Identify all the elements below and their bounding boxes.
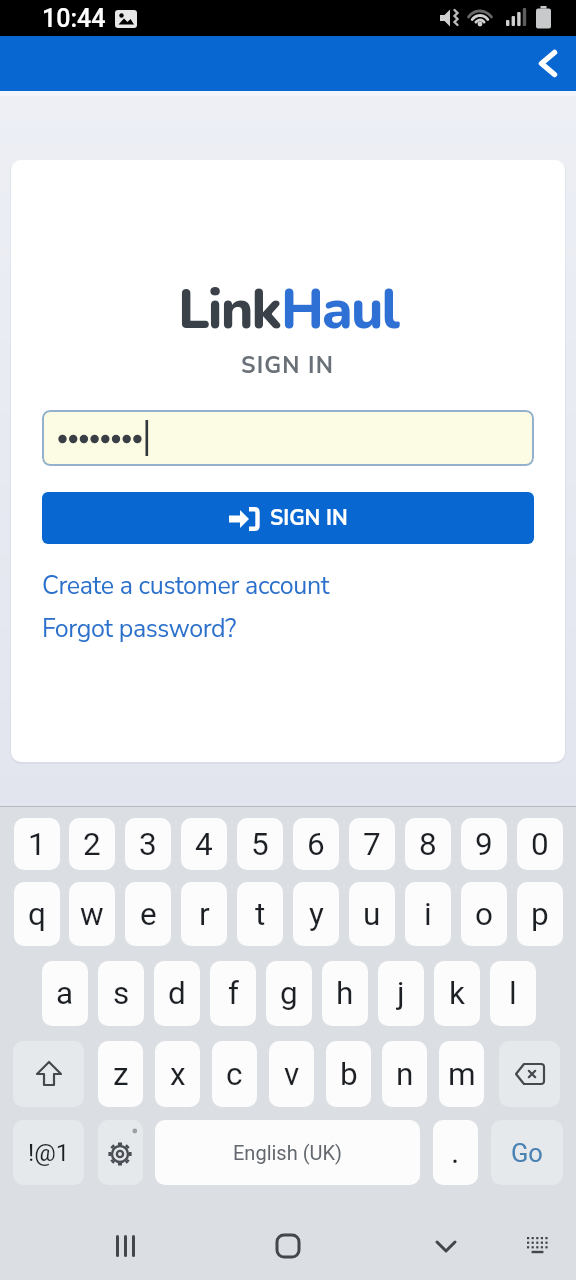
staticText: u (363, 896, 381, 933)
staticText: Forgot password? (42, 612, 236, 646)
staticText: q (28, 896, 46, 933)
staticText: !@1 (28, 1139, 70, 1167)
staticText: Haul (281, 272, 399, 347)
staticText: y (309, 896, 324, 933)
staticText: r (199, 896, 210, 933)
staticText: e (140, 896, 157, 933)
staticText: i (424, 896, 432, 933)
staticText: a (56, 975, 74, 1012)
staticText: o (475, 896, 493, 933)
staticText: g (280, 975, 298, 1012)
staticText: j (397, 975, 405, 1012)
staticText: k (449, 975, 465, 1012)
staticText: 2 (83, 826, 101, 863)
staticText: m (448, 1056, 476, 1093)
staticText: b (340, 1056, 358, 1093)
staticText: 3 (139, 826, 157, 863)
staticText: l (509, 975, 517, 1012)
staticText: p (531, 896, 549, 933)
staticText: x (170, 1056, 186, 1093)
staticText: . (451, 1134, 460, 1171)
staticText: 9 (475, 826, 493, 863)
staticText: SIGN IN (270, 504, 348, 533)
staticText: 4 (195, 826, 213, 863)
staticText: h (336, 975, 354, 1012)
staticText: z (113, 1056, 129, 1093)
staticText: 5 (251, 826, 269, 863)
staticText: v (284, 1056, 300, 1093)
staticText: c (226, 1056, 243, 1093)
staticText: s (113, 975, 130, 1012)
staticText: SIGN IN (241, 350, 335, 381)
staticText: f (228, 975, 239, 1012)
staticText: 0 (531, 826, 549, 863)
staticText: w (80, 896, 104, 933)
staticText: 6 (307, 826, 325, 863)
staticText: Create a customer account (42, 569, 330, 603)
staticText: 8 (419, 826, 437, 863)
staticText: 1 (28, 826, 46, 863)
staticText: t (255, 896, 266, 933)
staticText: 7 (363, 826, 381, 863)
staticText: d (168, 975, 186, 1012)
staticText: English (UK) (233, 1141, 342, 1164)
staticText: Link (178, 272, 281, 347)
staticText: n (396, 1056, 414, 1093)
staticText: Go (511, 1138, 543, 1168)
staticText: 10:44 (42, 4, 106, 33)
